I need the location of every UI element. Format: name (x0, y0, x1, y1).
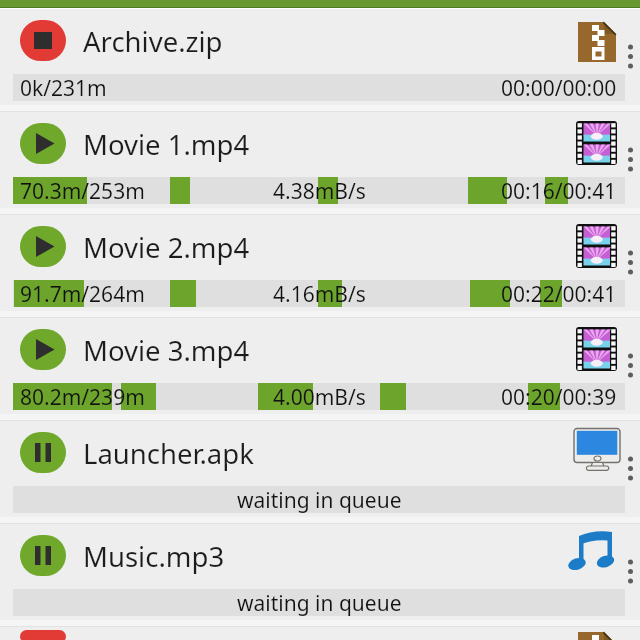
button[interactable] (626, 352, 635, 380)
button[interactable]: 80.2m/239m (13, 383, 625, 410)
button[interactable]: Launcher.apk (0, 421, 640, 524)
button[interactable] (626, 43, 635, 71)
button[interactable]: Archive.zip (0, 9, 640, 112)
staticText: 00:20/00:39 (501, 383, 617, 410)
staticText: Movie 2.mp4 (83, 229, 250, 266)
button[interactable] (626, 146, 635, 174)
button[interactable]: 91.7m/264m (13, 280, 625, 307)
button[interactable]: Movie 2.mp4 (0, 215, 640, 318)
staticText: 80.2m/239m (20, 383, 145, 410)
button[interactable]: 0k/231m (13, 74, 625, 101)
staticText: 70.3m/253m (20, 177, 145, 204)
button[interactable] (626, 249, 635, 277)
button[interactable] (20, 123, 66, 164)
staticText: 00:00/00:00 (501, 74, 617, 101)
button[interactable]: Movie 3.mp4 (0, 318, 640, 421)
staticText: 4.16mB/s (273, 280, 366, 307)
button[interactable] (20, 226, 66, 267)
button[interactable] (20, 432, 66, 473)
button[interactable] (626, 558, 635, 586)
staticText: Movie 3.mp4 (83, 332, 250, 369)
button[interactable]: Movie 1.mp4 (0, 112, 640, 215)
staticText: Music.mp3 (83, 538, 225, 575)
staticText: Archive.zip (83, 23, 223, 60)
staticText: Launcher.apk (83, 435, 254, 472)
staticText: Movie 1.mp4 (83, 126, 250, 163)
button[interactable] (20, 630, 66, 640)
button[interactable]: 70.3m/253m (13, 177, 625, 204)
staticText: 0k/231m (20, 74, 107, 101)
staticText: 00:22/00:41 (501, 280, 617, 307)
staticText: waiting in queue (237, 486, 402, 513)
button[interactable]: waiting in queue (13, 589, 625, 616)
staticText: 00:16/00:41 (501, 177, 617, 204)
button[interactable] (20, 535, 66, 576)
button[interactable] (20, 329, 66, 370)
button[interactable] (626, 455, 635, 483)
button[interactable] (0, 627, 640, 640)
button[interactable]: Music.mp3 (0, 524, 640, 627)
staticText: 4.38mB/s (273, 177, 366, 204)
staticText: 4.00mB/s (273, 383, 366, 410)
staticText: 91.7m/264m (20, 280, 145, 307)
staticText: waiting in queue (237, 589, 402, 616)
button[interactable]: waiting in queue (13, 486, 625, 513)
button[interactable] (20, 20, 66, 61)
